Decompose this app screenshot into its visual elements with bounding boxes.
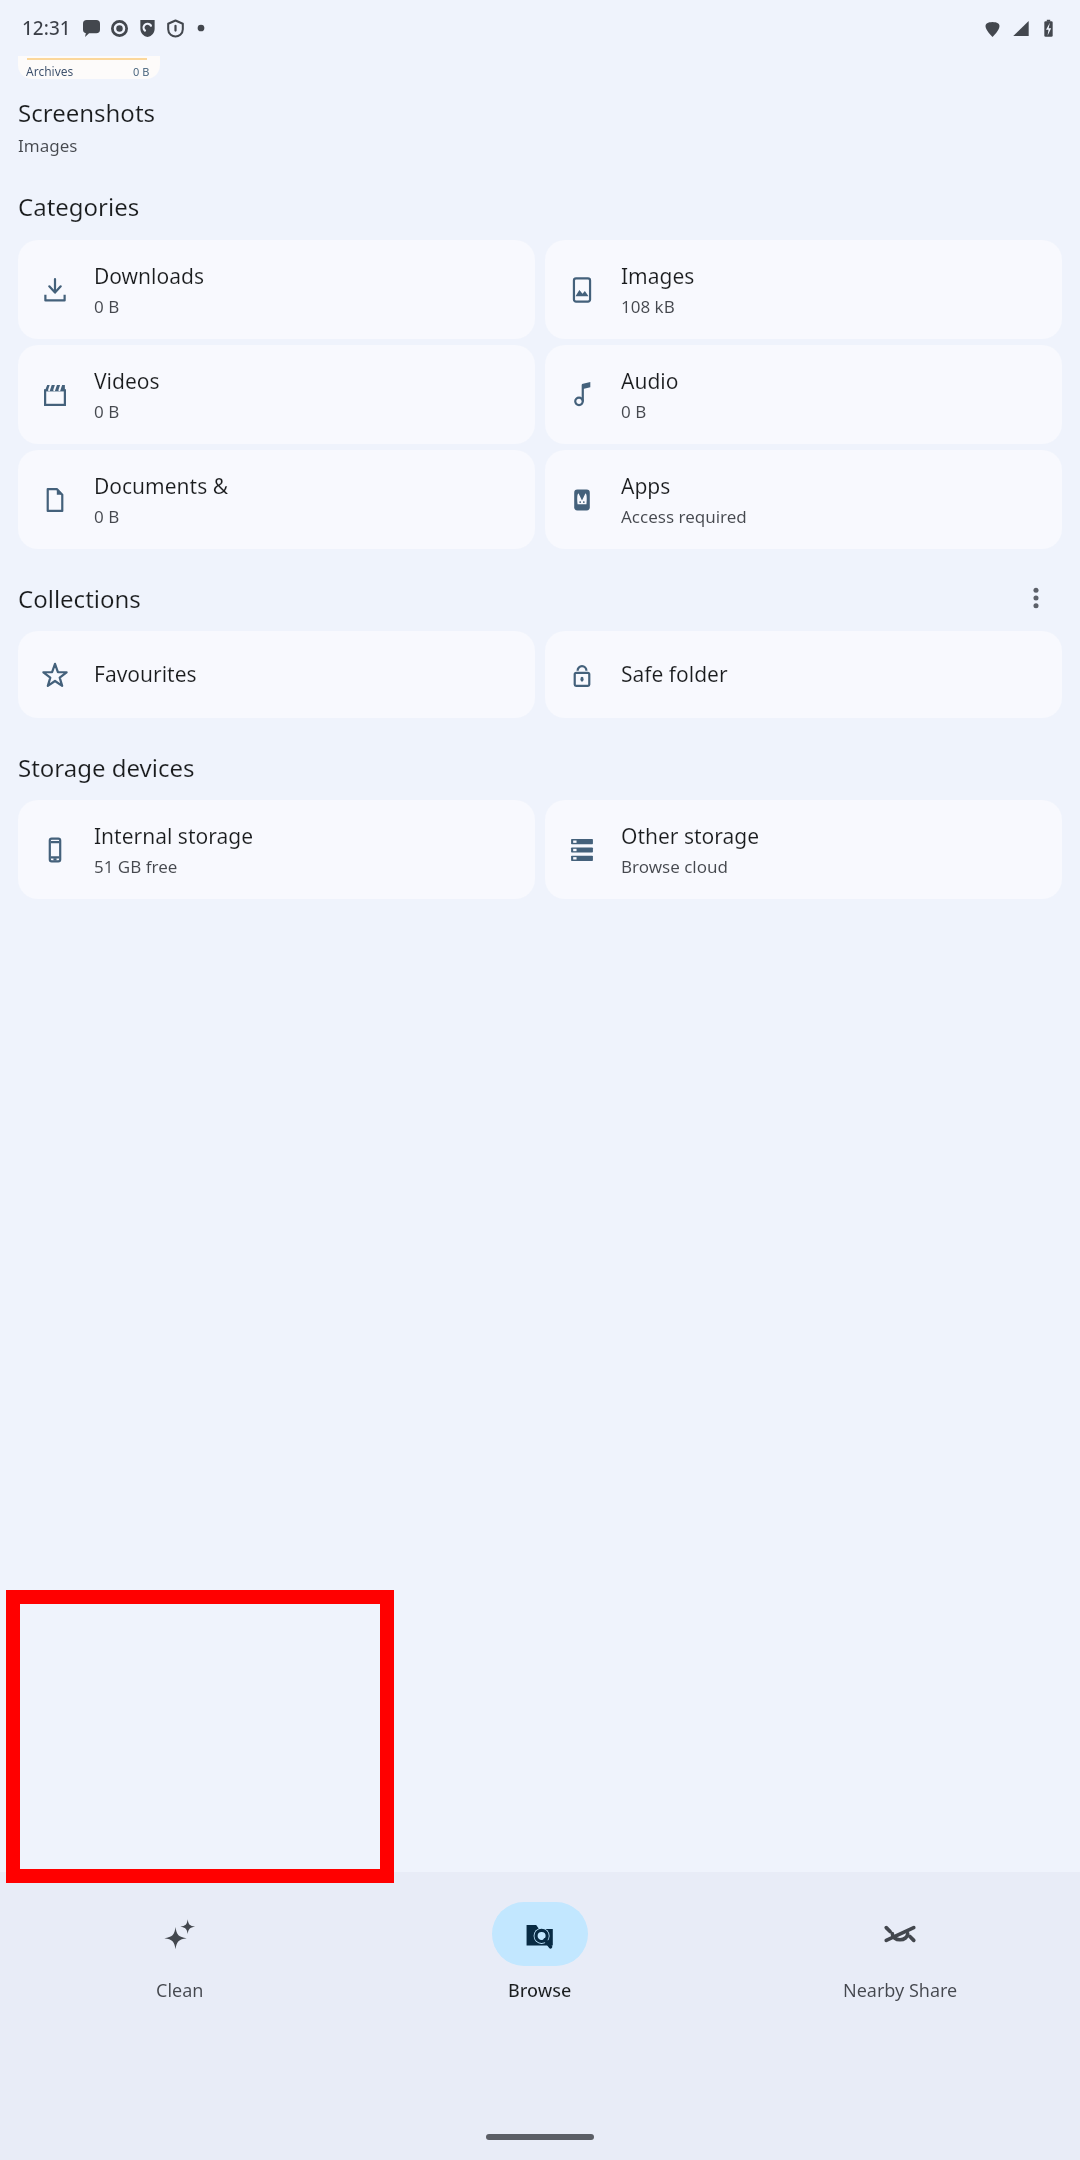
button[interactable]: Other storage xyxy=(545,800,1062,899)
button[interactable]: Images xyxy=(545,240,1062,339)
button[interactable]: More options xyxy=(1012,581,1060,615)
staticText: Documents & xyxy=(94,472,229,501)
staticText: Other storage xyxy=(621,822,760,851)
button[interactable]: Clean xyxy=(0,1902,360,2003)
staticText: Categories xyxy=(18,190,140,223)
staticText: 51 GB free xyxy=(94,855,178,878)
button[interactable]: Browse xyxy=(360,1902,720,2003)
staticText: Downloads xyxy=(94,262,204,291)
staticText: Access required xyxy=(621,505,747,528)
staticText: Images xyxy=(621,262,695,291)
button[interactable]: Apps xyxy=(545,450,1062,549)
staticText: Collections xyxy=(18,582,141,615)
staticText: Archives xyxy=(26,63,74,79)
staticText: Videos xyxy=(94,367,160,396)
button[interactable]: Safe folder xyxy=(545,631,1062,718)
staticText: Screenshots xyxy=(18,96,156,129)
button[interactable]: Screenshots xyxy=(18,96,156,157)
staticText: Clean xyxy=(156,1978,204,2003)
staticText: 0 B xyxy=(94,505,120,528)
staticText: 0 B xyxy=(621,400,647,423)
staticText: Images xyxy=(18,134,78,157)
staticText: Audio xyxy=(621,367,679,396)
button[interactable]: Documents & xyxy=(18,450,535,549)
staticText: 12:31 xyxy=(22,15,71,41)
staticText: Browse xyxy=(508,1978,572,2003)
staticText: Apps xyxy=(621,472,671,501)
button[interactable]: Archives xyxy=(18,56,160,79)
button[interactable]: Downloads xyxy=(18,240,535,339)
staticText: Favourites xyxy=(94,660,197,689)
staticText: Nearby Share xyxy=(843,1978,958,2003)
staticText: 108 kB xyxy=(621,295,675,318)
staticText: Storage devices xyxy=(18,751,195,784)
staticText: Safe folder xyxy=(621,660,728,689)
button[interactable]: Videos xyxy=(18,345,535,444)
staticText: 0 B xyxy=(94,400,120,423)
staticText: 0 B xyxy=(94,295,120,318)
staticText: 0 B xyxy=(133,64,150,79)
button[interactable]: Nearby Share xyxy=(720,1902,1080,2003)
staticText: Internal storage xyxy=(94,822,253,851)
staticText: Browse cloud xyxy=(621,855,728,878)
button[interactable]: Favourites xyxy=(18,631,535,718)
button[interactable]: Internal storage xyxy=(18,800,535,899)
button[interactable]: Audio xyxy=(545,345,1062,444)
